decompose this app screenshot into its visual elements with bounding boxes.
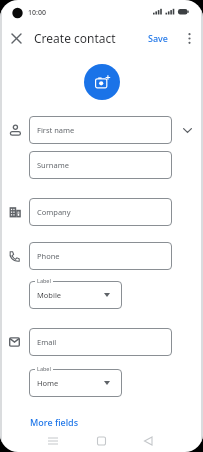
staticText: Home [37, 378, 59, 388]
button[interactable]: Surname [29, 151, 172, 179]
button[interactable] [8, 30, 24, 46]
button[interactable]: Home [29, 369, 122, 397]
button[interactable]: Email [29, 328, 172, 356]
button[interactable]: Phone [29, 242, 172, 270]
staticText: Phone [37, 251, 60, 261]
staticText: Email [37, 337, 57, 347]
button[interactable]: Mobile [29, 281, 122, 309]
button[interactable] [183, 128, 192, 133]
staticText: First name [37, 125, 75, 135]
staticText: Label [37, 277, 51, 284]
button[interactable]: First name [29, 116, 172, 144]
button[interactable] [84, 64, 120, 100]
staticText: Create contact [34, 30, 116, 46]
staticText: Mobile [37, 290, 62, 300]
button[interactable]: Company [29, 198, 172, 226]
staticText: Surname [37, 160, 69, 170]
staticText: Save [148, 32, 169, 44]
button[interactable]: Save [148, 32, 169, 44]
staticText: Label [37, 365, 51, 372]
staticText: Company [37, 207, 71, 217]
button[interactable]: More fields [30, 416, 79, 428]
button[interactable] [183, 32, 195, 44]
staticText: More fields [30, 416, 79, 428]
staticText: 10:00 [28, 8, 46, 18]
